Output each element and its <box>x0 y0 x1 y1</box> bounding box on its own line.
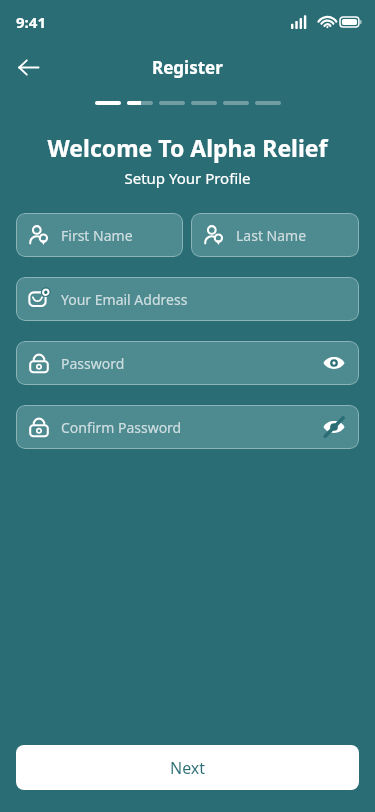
button[interactable]: First Name <box>16 213 183 257</box>
staticText: Password <box>61 354 125 373</box>
button[interactable]: Password <box>16 341 359 385</box>
button[interactable]: Your Email Address <box>16 277 359 321</box>
button[interactable]: Hide password <box>321 414 347 440</box>
staticText: Register <box>152 56 223 79</box>
button[interactable]: Last Name <box>191 213 359 257</box>
staticText: Your Email Address <box>61 290 188 309</box>
staticText: Setup Your Profile <box>0 168 375 188</box>
staticText: 9:41 <box>16 12 46 32</box>
staticText: Confirm Password <box>61 418 182 437</box>
staticText: Welcome To Alpha Relief <box>0 132 375 163</box>
staticText: Next <box>170 757 206 779</box>
staticText: Last Name <box>236 226 307 245</box>
staticText: First Name <box>61 226 133 245</box>
button[interactable]: Next <box>16 745 359 790</box>
button[interactable]: Show password <box>321 350 347 376</box>
button[interactable]: Confirm Password <box>16 405 359 449</box>
button[interactable]: Back <box>10 49 46 85</box>
